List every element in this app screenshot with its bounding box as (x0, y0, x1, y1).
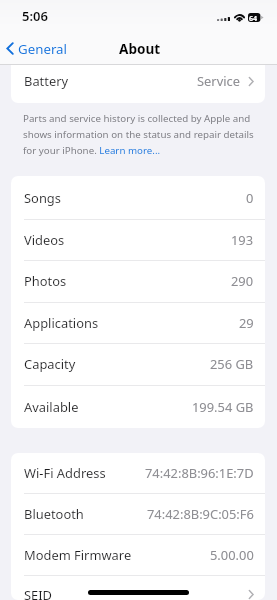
button[interactable]: Available (11, 385, 265, 428)
staticText: Songs (24, 189, 61, 207)
staticText: Photos (24, 272, 67, 290)
staticText: Modem Firmware (24, 546, 132, 564)
button[interactable]: Photos (11, 260, 265, 302)
button[interactable]: Videos (11, 219, 265, 260)
button[interactable]: Capacity (11, 343, 265, 385)
staticText: About (119, 39, 161, 58)
staticText: 256 GB (210, 355, 254, 373)
button[interactable]: Songs (11, 176, 265, 219)
staticText: 5:06 (22, 7, 48, 25)
staticText: 74:42:8B:96:1E:7D (145, 464, 254, 482)
button[interactable]: SEID (11, 575, 265, 600)
staticText: 64 (249, 13, 258, 22)
other: Battery 64 percent (248, 13, 264, 22)
staticText: 290 (231, 272, 254, 290)
other: Wi-Fi (233, 12, 246, 21)
staticText: Bluetooth (24, 505, 84, 523)
button[interactable]: General (5, 32, 74, 65)
button[interactable]: Modem Firmware (11, 534, 265, 575)
staticText: 193 (231, 231, 254, 249)
button[interactable]: Applications (11, 302, 265, 343)
staticText: Applications (24, 314, 99, 332)
staticText: Service (197, 72, 241, 90)
staticText: 199.54 GB (192, 398, 254, 416)
staticText: Videos (24, 231, 65, 249)
staticText: Available (24, 398, 79, 416)
staticText: 74:42:8B:9C:05:F6 (147, 505, 254, 523)
staticText: Battery (24, 72, 69, 90)
staticText: Capacity (24, 355, 76, 373)
button[interactable]: Wi-Fi Address (11, 453, 265, 493)
staticText: Wi-Fi Address (24, 464, 106, 482)
button[interactable]: Battery (11, 65, 265, 100)
staticText: General (18, 40, 68, 58)
staticText: 0 (246, 189, 254, 207)
staticText: 5.00.00 (210, 546, 254, 564)
other: Cellular signal (217, 17, 230, 21)
staticText: 29 (239, 314, 254, 332)
button[interactable]: Bluetooth (11, 493, 265, 534)
staticText: SEID (24, 586, 53, 600)
staticText: Parts and service history is collected b… (23, 112, 254, 157)
